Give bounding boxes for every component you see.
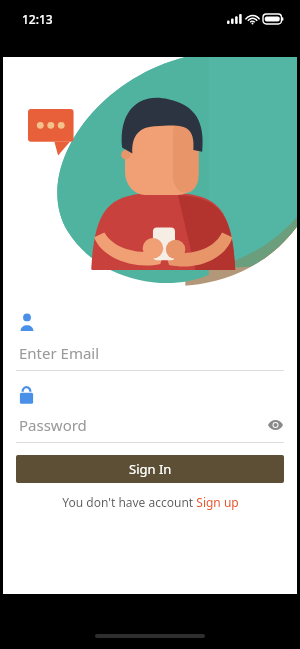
button[interactable]: Enter Email [16,343,284,370]
staticText: Password [19,415,266,435]
staticText: Enter Email [19,343,100,363]
button[interactable]: You don't have account Sign up [16,494,284,510]
staticText: Sign In [129,460,172,478]
button[interactable]: Password [16,415,284,442]
staticText: You don't have account Sign up [62,494,239,510]
staticText: 12:13 [22,11,53,27]
button[interactable]: Sign In [16,455,284,483]
button[interactable]: Show password [266,416,284,434]
